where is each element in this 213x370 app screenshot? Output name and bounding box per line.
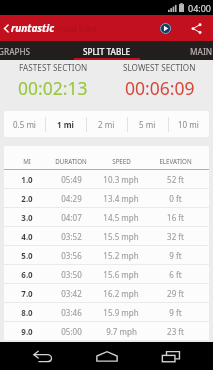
- staticText: 00:02:13: [18, 76, 88, 100]
- staticText: 5.0: [21, 250, 33, 261]
- staticText: 9.7 mph: [106, 326, 137, 337]
- staticText: 0.5 mi: [13, 119, 36, 130]
- staticText: 9 ft: [169, 307, 182, 318]
- button[interactable]: 3.0: [4, 208, 209, 226]
- staticText: 15.5 mph: [103, 231, 139, 242]
- button[interactable]: 9.0: [4, 322, 209, 340]
- staticText: 04:00: [188, 2, 212, 14]
- staticText: 6 ft: [169, 269, 182, 280]
- staticText: 4.0: [21, 231, 33, 242]
- staticText: 15.9 mph: [103, 307, 139, 318]
- staticText: ELEVATION: [159, 157, 192, 165]
- staticText: 05:49: [61, 174, 82, 185]
- staticText: FASTEST SECTION: [19, 62, 88, 73]
- staticText: 03:50: [61, 269, 82, 280]
- staticText: 13.4 mph: [103, 193, 139, 204]
- button[interactable]: Share: [185, 15, 207, 41]
- staticText: 9.0: [21, 326, 33, 337]
- staticText: DURATION: [55, 157, 87, 165]
- button[interactable]: 2.0: [4, 189, 209, 207]
- button[interactable]: Back: [21, 342, 65, 370]
- staticText: 32 ft: [167, 231, 184, 242]
- staticText: 03:46: [61, 307, 82, 318]
- staticText: 15.2 mph: [103, 250, 139, 261]
- staticText: 2.0: [21, 193, 33, 204]
- staticText: 14.5 mph: [103, 212, 139, 223]
- staticText: MI: [23, 157, 31, 165]
- staticText: road bike: [57, 22, 97, 34]
- staticText: 04:29: [61, 193, 82, 204]
- button[interactable]: GRAPHS: [0, 41, 59, 60]
- staticText: 9 ft: [169, 250, 182, 261]
- staticText: runtastic: [11, 21, 54, 35]
- staticText: SLOWEST SECTION: [123, 62, 196, 73]
- staticText: 00:06:09: [125, 76, 195, 100]
- button[interactable]: runtastic: [0, 15, 99, 41]
- button[interactable]: 7.0: [4, 284, 209, 302]
- staticText: 03:42: [61, 288, 82, 299]
- staticText: SPLIT TABLE: [83, 46, 131, 57]
- staticText: 16 ft: [167, 212, 184, 223]
- staticText: SPEED: [112, 157, 131, 165]
- button[interactable]: 5 mi: [127, 111, 168, 137]
- button[interactable]: 0.5 mi: [4, 111, 45, 137]
- staticText: 5 mi: [139, 119, 156, 130]
- staticText: 0 ft: [169, 193, 182, 204]
- button[interactable]: Recent apps: [149, 342, 193, 370]
- staticText: MAIN: [190, 46, 213, 57]
- staticText: 2 mi: [98, 119, 115, 130]
- staticText: 6.0: [21, 269, 33, 280]
- staticText: 05:00: [61, 326, 82, 337]
- button[interactable]: MAIN: [156, 41, 213, 60]
- staticText: 10 mi: [178, 119, 199, 130]
- button[interactable]: Play video: [155, 15, 175, 41]
- button[interactable]: 1.0: [4, 170, 209, 188]
- staticText: 1 mi: [57, 119, 74, 130]
- button[interactable]: Home: [85, 342, 129, 370]
- staticText: GRAPHS: [0, 46, 31, 57]
- button[interactable]: 8.0: [4, 303, 209, 321]
- button[interactable]: 6.0: [4, 265, 209, 283]
- staticText: 10.3 mph: [103, 174, 139, 185]
- button[interactable]: 4.0: [4, 227, 209, 245]
- staticText: 16.2 mph: [103, 288, 139, 299]
- button[interactable]: 2 mi: [86, 111, 127, 137]
- staticText: 15.6 mph: [103, 269, 139, 280]
- staticText: 23 ft: [167, 326, 184, 337]
- staticText: 29 ft: [167, 288, 184, 299]
- staticText: 1.0: [21, 174, 33, 185]
- button[interactable]: SLOWEST SECTION: [106, 60, 213, 111]
- button[interactable]: SPLIT TABLE: [74, 41, 140, 60]
- staticText: 04:07: [61, 212, 82, 223]
- button[interactable]: 1 mi: [45, 111, 86, 137]
- staticText: 03:52: [61, 231, 82, 242]
- button[interactable]: 10 mi: [168, 111, 209, 137]
- button[interactable]: FASTEST SECTION: [0, 60, 106, 111]
- staticText: 8.0: [21, 307, 33, 318]
- button[interactable]: 5.0: [4, 246, 209, 264]
- staticText: 3.0: [21, 212, 33, 223]
- staticText: 03:56: [61, 250, 82, 261]
- staticText: 52 ft: [167, 174, 184, 185]
- staticText: 7.0: [21, 288, 33, 299]
